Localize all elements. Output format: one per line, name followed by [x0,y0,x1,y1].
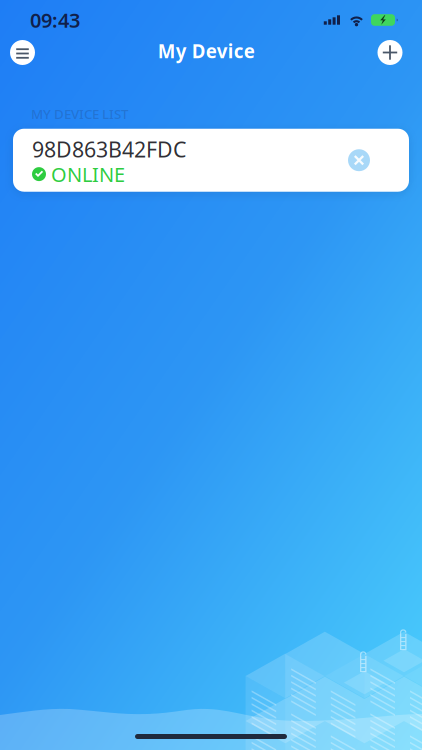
staticText: ONLINE [51,161,125,187]
staticText: My Device [158,39,255,63]
button[interactable]: 98D863B42FDC [13,129,409,192]
button[interactable]: Remove device [337,129,381,191]
button[interactable]: Menu [0,32,44,72]
staticText: 09:43 [30,7,80,33]
staticText: 98D863B42FDC [32,135,186,163]
staticText: MY DEVICE LIST [31,105,128,123]
button[interactable]: Add device [368,32,412,72]
